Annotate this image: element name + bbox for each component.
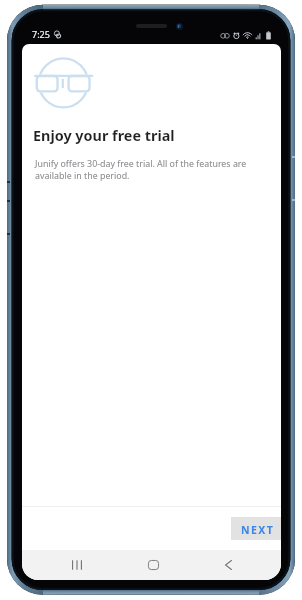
staticText: 7:25 xyxy=(32,28,50,40)
staticText: NEXT xyxy=(241,523,275,537)
staticText: Junify offers 30-day free trial. All of … xyxy=(35,158,259,182)
staticText: Enjoy your free trial xyxy=(33,126,175,146)
button[interactable]: Home xyxy=(138,550,168,580)
button[interactable]: NEXT xyxy=(231,517,281,540)
button[interactable]: Back xyxy=(213,550,243,580)
button[interactable]: Recent apps xyxy=(62,550,92,580)
